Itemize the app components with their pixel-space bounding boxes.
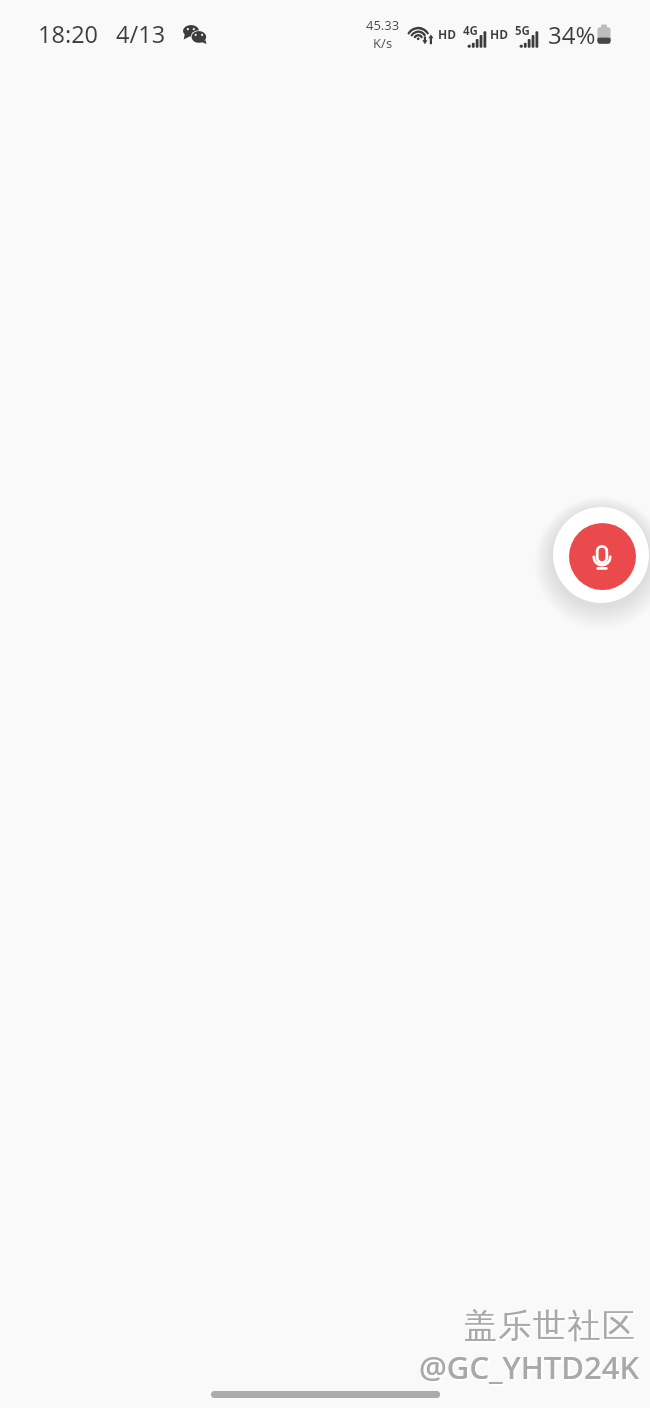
staticText: K/s [373,34,393,52]
staticText: 45.33 [366,16,400,34]
button[interactable]: Voice input [553,507,649,603]
staticText: 4/13 [116,18,166,50]
staticText: HD [438,26,456,42]
staticText: 盖乐世社区 [464,1305,637,1347]
staticText: 18:20 [38,18,99,50]
staticText: @GC_YHTD24K [419,1346,639,1388]
staticText: 盖乐世社区 [466,1307,639,1349]
staticText: 4G [463,23,478,39]
staticText: 34% [548,18,596,51]
staticText: @GC_YHTD24K [421,1348,641,1390]
staticText: 5G [515,23,530,39]
staticText: HD [490,26,508,42]
